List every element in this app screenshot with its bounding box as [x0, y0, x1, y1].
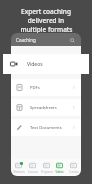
staticText: Expert coaching delivered in — [6, 7, 86, 25]
staticText: Webinars — [13, 170, 25, 174]
staticText: Courses — [28, 170, 38, 174]
button[interactable]: Webinars — [12, 162, 25, 174]
button[interactable]: Courses — [26, 162, 39, 174]
staticText: Coaching — [16, 37, 36, 43]
staticText: Videos — [55, 170, 64, 174]
staticText: multiple formats — [20, 25, 73, 34]
button[interactable]: Videos — [3, 54, 89, 74]
staticText: Videos — [27, 61, 43, 68]
button[interactable]: Custom — [67, 162, 80, 174]
button[interactable]: Spreadsheets — [11, 99, 81, 116]
staticText: Custom — [69, 170, 79, 174]
button[interactable]: Text Documents — [11, 119, 81, 136]
staticText: Text Documents — [30, 125, 62, 131]
button[interactable]: Programs — [40, 162, 53, 174]
button[interactable]: Videos — [53, 162, 66, 174]
button[interactable]: PDFs — [11, 79, 81, 96]
staticText: Programs — [41, 170, 53, 174]
staticText: Spreadsheets — [30, 105, 57, 111]
button[interactable]: Search — [68, 36, 76, 44]
staticText: PDFs — [30, 85, 40, 91]
